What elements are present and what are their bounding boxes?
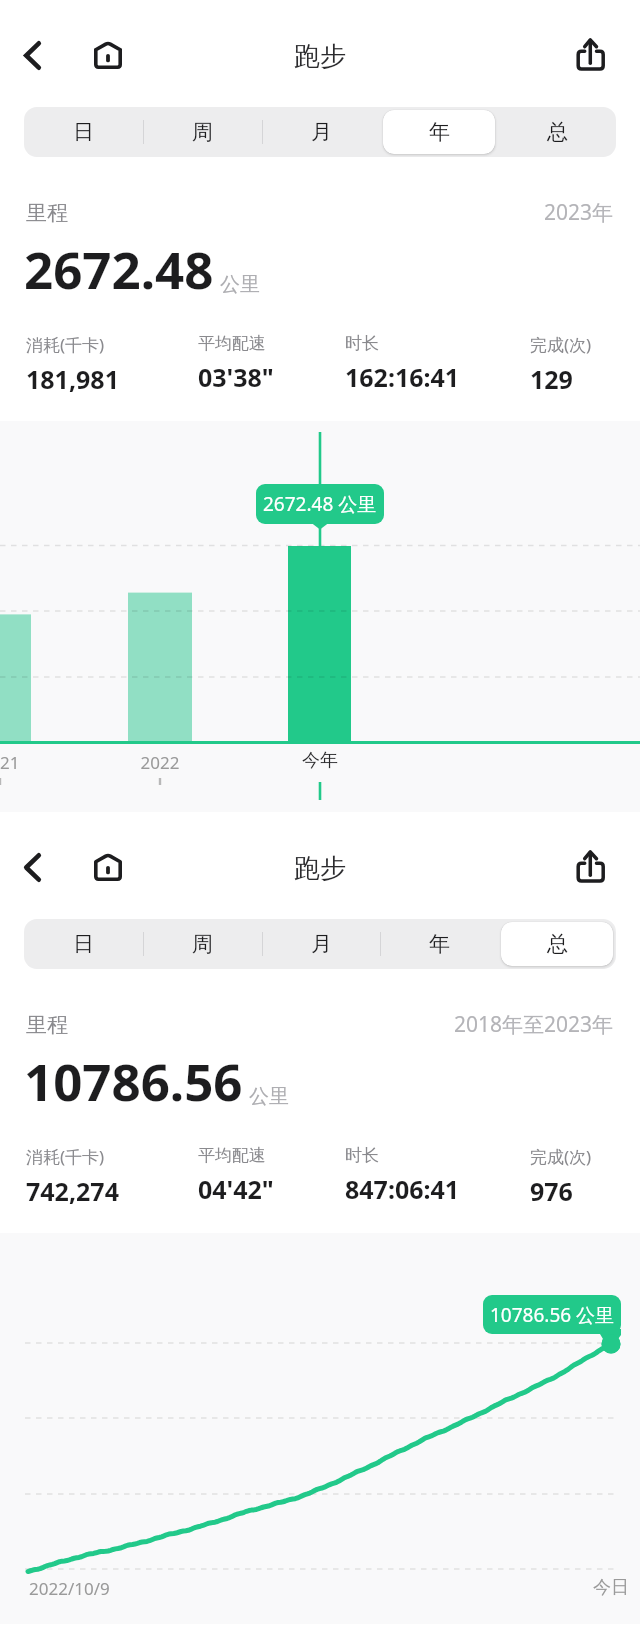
staticText: 年 bbox=[429, 931, 450, 957]
staticText: 2022/10/9 bbox=[29, 1577, 110, 1600]
staticText: 2023年 bbox=[544, 198, 614, 227]
staticText: 平均配速 bbox=[198, 333, 266, 354]
button[interactable]: 周 bbox=[143, 919, 262, 969]
staticText: 04'42" bbox=[198, 1172, 274, 1206]
button[interactable]: 总 bbox=[498, 919, 616, 969]
staticText: 消耗(千卡) bbox=[26, 1145, 105, 1168]
staticText: 日 bbox=[73, 931, 94, 957]
button[interactable]: 年 bbox=[380, 919, 498, 969]
staticText: 847:06:41 bbox=[345, 1172, 460, 1206]
staticText: 今日 bbox=[593, 1576, 629, 1599]
button[interactable]: Home bbox=[83, 843, 131, 891]
button[interactable]: 月 bbox=[262, 919, 380, 969]
staticText: 周 bbox=[192, 119, 213, 145]
staticText: 里程 bbox=[26, 1012, 68, 1038]
staticText: 消耗(千卡) bbox=[26, 333, 105, 356]
staticText: 10786.56 公里 bbox=[490, 1302, 615, 1328]
button[interactable]: 月 bbox=[262, 107, 380, 157]
staticText: 2021 bbox=[0, 751, 30, 774]
staticText: 总 bbox=[547, 119, 568, 145]
staticText: 日 bbox=[73, 119, 94, 145]
staticText: 181,981 bbox=[26, 362, 119, 396]
button[interactable]: Home bbox=[83, 31, 131, 79]
staticText: 2672.48 公里 bbox=[263, 491, 377, 517]
staticText: 跑步 bbox=[0, 852, 640, 885]
staticText: 今年 bbox=[290, 749, 350, 772]
staticText: 公里 bbox=[220, 272, 260, 297]
staticText: 742,274 bbox=[26, 1174, 119, 1208]
staticText: 162:16:41 bbox=[345, 360, 460, 394]
staticText: 年 bbox=[429, 119, 450, 145]
staticText: 周 bbox=[192, 931, 213, 957]
staticText: 完成(次) bbox=[530, 1145, 592, 1168]
staticText: 跑步 bbox=[0, 40, 640, 73]
staticText: 完成(次) bbox=[530, 333, 592, 356]
staticText: 2672.48 bbox=[24, 234, 214, 303]
button[interactable]: Back bbox=[8, 31, 56, 79]
staticText: 10786.56 bbox=[24, 1046, 243, 1115]
staticText: 129 bbox=[530, 362, 573, 396]
button[interactable]: 周 bbox=[143, 107, 262, 157]
staticText: 里程 bbox=[26, 200, 68, 226]
staticText: 2018年至2023年 bbox=[454, 1010, 614, 1039]
staticText: 平均配速 bbox=[198, 1145, 266, 1166]
staticText: 2022 bbox=[130, 751, 190, 774]
button[interactable]: Share bbox=[567, 31, 615, 79]
button[interactable]: 总 bbox=[498, 107, 616, 157]
staticText: 月 bbox=[311, 931, 332, 957]
staticText: 公里 bbox=[249, 1084, 289, 1109]
staticText: 976 bbox=[530, 1174, 573, 1208]
staticText: 总 bbox=[547, 931, 568, 957]
button[interactable]: Back bbox=[8, 843, 56, 891]
button[interactable]: Share bbox=[567, 843, 615, 891]
staticText: 03'38" bbox=[198, 360, 274, 394]
button[interactable]: 年 bbox=[380, 107, 498, 157]
button[interactable]: 日 bbox=[24, 919, 143, 969]
staticText: 月 bbox=[311, 119, 332, 145]
staticText: 时长 bbox=[345, 1145, 379, 1166]
button[interactable]: 日 bbox=[24, 107, 143, 157]
staticText: 时长 bbox=[345, 333, 379, 354]
